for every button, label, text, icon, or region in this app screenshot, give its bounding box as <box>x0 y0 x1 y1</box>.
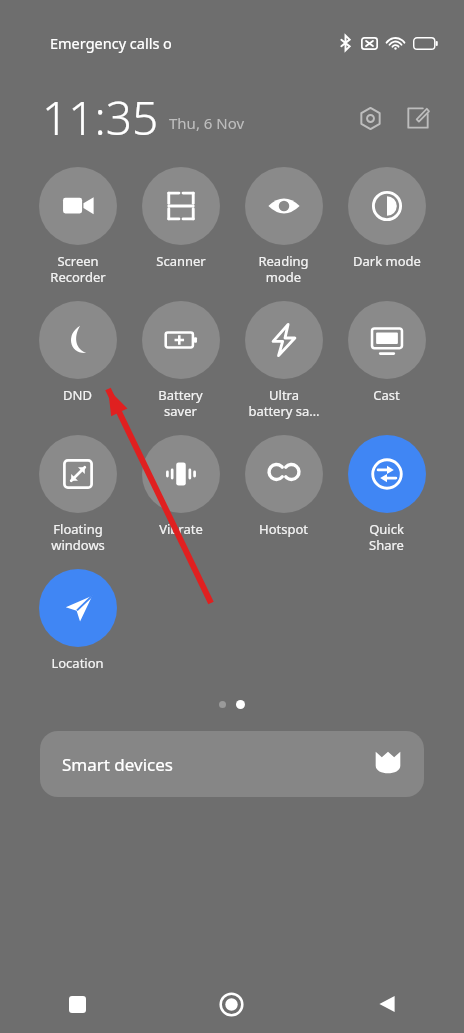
button[interactable]: Edit <box>398 98 438 138</box>
button[interactable]: Recents <box>0 975 154 1033</box>
button[interactable]: Vibrate <box>129 431 232 542</box>
staticText: Thu, 6 Nov <box>169 113 245 133</box>
button[interactable]: Scanner <box>129 163 232 274</box>
button[interactable]: Hotspot <box>232 431 335 542</box>
staticText: Battery saver <box>158 386 203 419</box>
button[interactable]: Floating windows <box>26 431 129 557</box>
staticText: 11:35 <box>42 86 159 149</box>
staticText: Screen Recorder <box>50 252 106 285</box>
staticText: Scanner <box>156 252 206 270</box>
button[interactable]: Location <box>26 565 129 676</box>
button[interactable]: Home <box>154 975 309 1033</box>
staticText: Hotspot <box>259 520 308 538</box>
button[interactable]: Reading mode <box>232 163 335 289</box>
button[interactable]: Dark mode <box>335 163 438 274</box>
button[interactable]: Screen Recorder <box>26 163 129 289</box>
button[interactable]: Battery saver <box>129 297 232 423</box>
staticText: Dark mode <box>353 252 421 270</box>
button[interactable]: Ultra battery sa… <box>232 297 335 423</box>
staticText: Smart devices <box>62 753 173 776</box>
button[interactable]: Quick Share <box>335 431 438 557</box>
button[interactable]: Back <box>309 975 464 1033</box>
staticText: Cast <box>373 386 400 404</box>
staticText: Location <box>51 654 104 672</box>
staticText: Emergency calls o <box>50 33 172 53</box>
button[interactable]: Settings <box>350 98 390 138</box>
button[interactable]: Smart devices <box>40 731 424 797</box>
staticText: Vibrate <box>159 520 203 538</box>
button[interactable]: Cast <box>335 297 438 408</box>
staticText: Reading mode <box>258 252 309 285</box>
staticText: Ultra battery sa… <box>248 386 320 419</box>
button[interactable]: DND <box>26 297 129 408</box>
staticText: Floating windows <box>51 520 105 553</box>
staticText: DND <box>63 386 92 404</box>
staticText: Quick Share <box>369 520 404 553</box>
